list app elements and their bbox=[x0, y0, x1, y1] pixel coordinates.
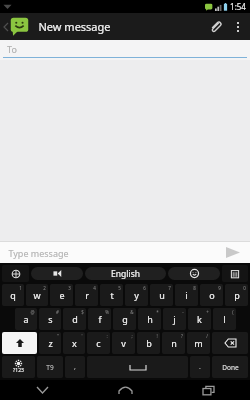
staticText: To bbox=[7, 43, 17, 55]
staticText: @ bbox=[30, 309, 35, 315]
staticText: y bbox=[134, 289, 139, 301]
staticText: 8 bbox=[193, 285, 196, 291]
button[interactable]: u bbox=[150, 284, 173, 306]
button[interactable]: Clipboard bbox=[222, 265, 248, 282]
staticText: q bbox=[10, 289, 16, 301]
staticText: p bbox=[234, 289, 240, 301]
button[interactable]: Emoji bbox=[168, 267, 220, 280]
button[interactable]: b bbox=[137, 332, 160, 354]
staticText: - bbox=[182, 309, 184, 315]
button[interactable]: More options bbox=[228, 13, 248, 40]
staticText: : bbox=[106, 333, 108, 339]
button[interactable]: Recent apps bbox=[167, 380, 250, 400]
button[interactable]: z bbox=[39, 332, 61, 354]
staticText: ? bbox=[181, 333, 183, 339]
staticText: b bbox=[146, 337, 152, 349]
button[interactable]: m bbox=[187, 332, 210, 354]
staticText: f bbox=[98, 313, 102, 325]
button[interactable]: d bbox=[63, 308, 86, 330]
button[interactable]: English bbox=[85, 267, 166, 280]
staticText: % bbox=[105, 309, 109, 315]
button[interactable]: Period bbox=[190, 356, 210, 378]
staticText: * bbox=[156, 309, 159, 315]
button[interactable]: Shift bbox=[2, 332, 37, 354]
staticText: ' bbox=[81, 333, 83, 339]
staticText: e bbox=[59, 289, 65, 301]
button[interactable]: Send bbox=[216, 242, 250, 263]
staticText: n bbox=[171, 337, 177, 349]
button[interactable]: l bbox=[213, 308, 236, 330]
staticText: 9 bbox=[218, 285, 221, 291]
button[interactable]: Symbols bbox=[2, 356, 35, 378]
button[interactable]: T9 bbox=[37, 356, 63, 378]
button[interactable]: h bbox=[138, 308, 161, 330]
staticText: c bbox=[96, 337, 101, 349]
staticText: ( bbox=[232, 309, 234, 315]
button[interactable]: n bbox=[162, 332, 185, 354]
staticText: # bbox=[56, 309, 59, 315]
staticText: 6 bbox=[143, 285, 146, 291]
staticText: 0 bbox=[243, 285, 246, 291]
staticText: a bbox=[23, 313, 29, 325]
staticText: i bbox=[185, 289, 188, 301]
staticText: 7 bbox=[168, 285, 171, 291]
staticText: Type message bbox=[8, 247, 69, 259]
staticText: Done bbox=[222, 363, 239, 372]
staticText: " bbox=[57, 333, 59, 339]
button[interactable]: f bbox=[88, 308, 111, 330]
button[interactable]: c bbox=[87, 332, 110, 354]
button[interactable]: Hide keyboard bbox=[0, 380, 84, 400]
button[interactable]: p bbox=[225, 284, 248, 306]
staticText: t bbox=[110, 289, 114, 301]
staticText: , bbox=[74, 362, 76, 372]
button[interactable]: To bbox=[0, 40, 250, 60]
staticText: s bbox=[48, 313, 53, 325]
staticText: h bbox=[147, 313, 153, 325]
staticText: o bbox=[209, 289, 215, 301]
button[interactable]: Type message bbox=[0, 242, 216, 263]
button[interactable]: g bbox=[113, 308, 136, 330]
staticText: 4 bbox=[93, 285, 96, 291]
staticText: 1:54 bbox=[230, 1, 246, 12]
button[interactable]: Comma bbox=[65, 356, 85, 378]
staticText: 2 bbox=[43, 285, 46, 291]
button[interactable]: t bbox=[100, 284, 123, 306]
staticText: w bbox=[33, 289, 41, 301]
button[interactable]: s bbox=[39, 308, 61, 330]
button[interactable]: Done bbox=[212, 356, 248, 378]
staticText: d bbox=[72, 313, 78, 325]
staticText: ?123 bbox=[13, 367, 24, 374]
staticText: j bbox=[173, 313, 176, 325]
button[interactable]: v bbox=[112, 332, 135, 354]
staticText: k bbox=[197, 313, 202, 325]
staticText: English bbox=[111, 268, 140, 280]
staticText: / bbox=[206, 333, 208, 339]
button[interactable]: Voice input bbox=[31, 267, 83, 280]
staticText: z bbox=[48, 337, 53, 349]
button[interactable]: r bbox=[75, 284, 98, 306]
staticText: r bbox=[85, 289, 89, 301]
button[interactable]: w bbox=[26, 284, 48, 306]
button[interactable]: Space bbox=[87, 356, 188, 378]
button[interactable]: o bbox=[200, 284, 223, 306]
button[interactable]: a bbox=[15, 308, 37, 330]
staticText: m bbox=[194, 337, 203, 349]
button[interactable]: e bbox=[50, 284, 73, 306]
staticText: 5 bbox=[118, 285, 121, 291]
button[interactable]: Home bbox=[84, 380, 167, 400]
button[interactable]: x bbox=[63, 332, 85, 354]
staticText: u bbox=[159, 289, 165, 301]
button[interactable] bbox=[0, 13, 33, 40]
button[interactable]: Backspace bbox=[212, 332, 248, 354]
staticText: & bbox=[130, 309, 134, 315]
button[interactable]: j bbox=[163, 308, 186, 330]
button[interactable]: Attach bbox=[202, 13, 228, 40]
button[interactable]: q bbox=[2, 284, 24, 306]
button[interactable]: i bbox=[175, 284, 198, 306]
staticText: 1 bbox=[19, 285, 22, 291]
button[interactable]: k bbox=[188, 308, 211, 330]
staticText: x bbox=[72, 337, 77, 349]
staticText: T9 bbox=[46, 363, 54, 372]
button[interactable]: Input settings bbox=[2, 265, 29, 282]
button[interactable]: y bbox=[125, 284, 148, 306]
